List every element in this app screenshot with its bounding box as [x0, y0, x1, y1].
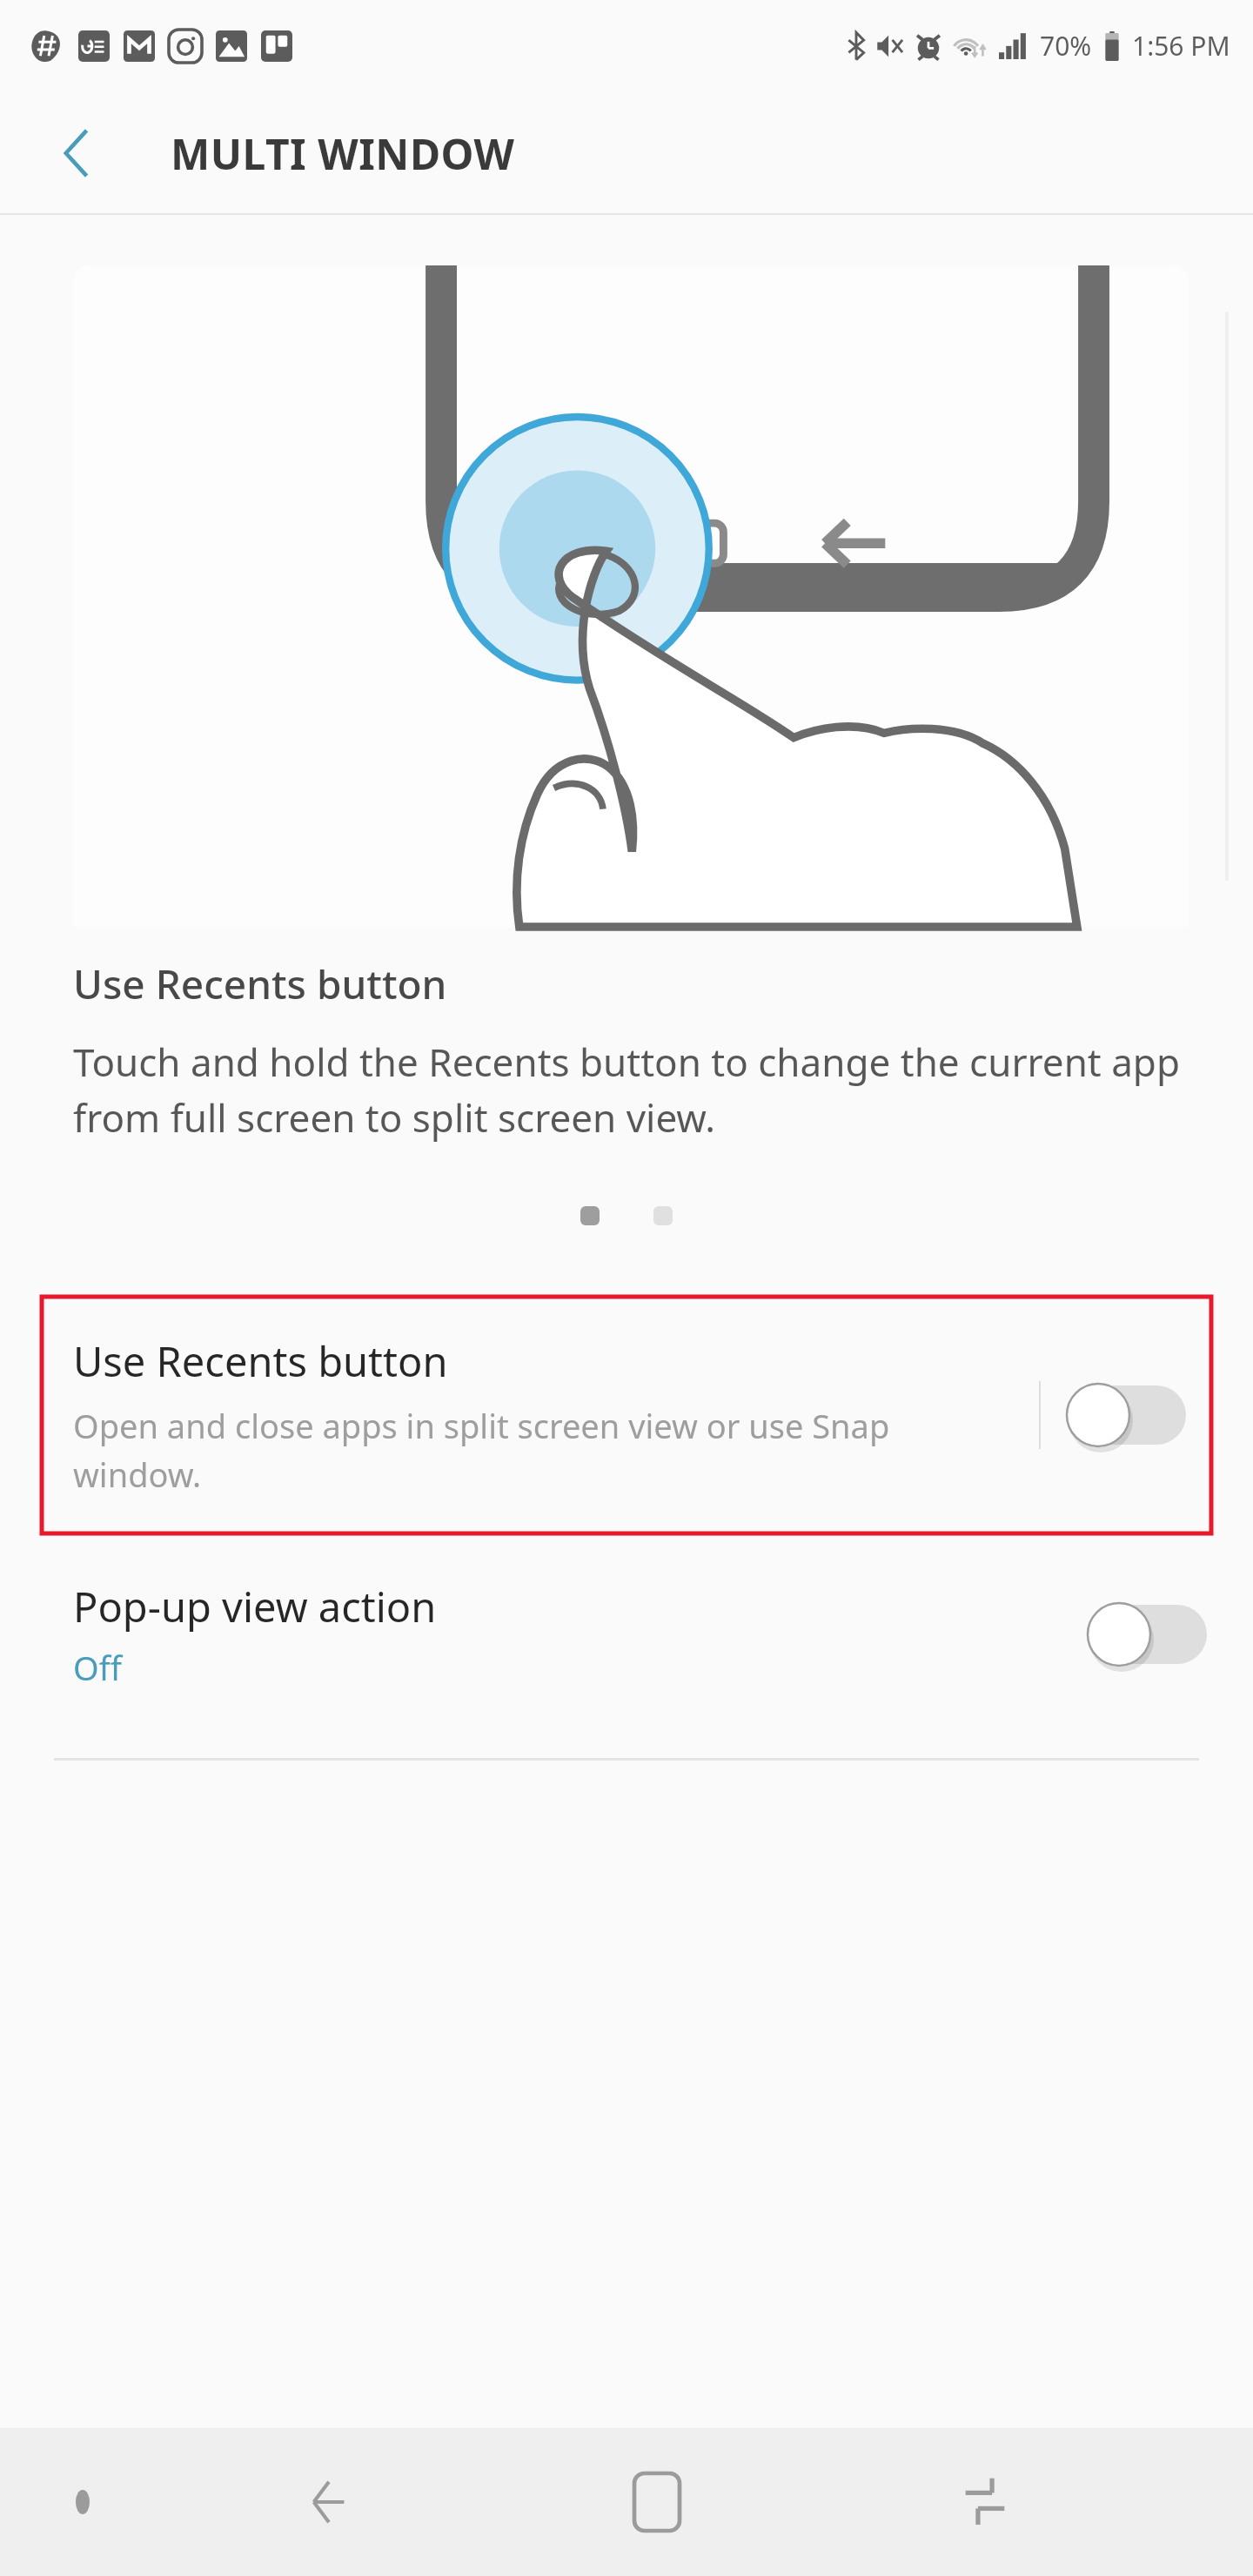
- staticText: Open and close apps in split screen view…: [73, 1403, 1022, 1497]
- staticText: Use Recents button: [73, 956, 447, 1011]
- button[interactable]: Use Recents button: [42, 1297, 1211, 1533]
- button[interactable]: Recent apps: [821, 2428, 1149, 2576]
- staticText: 70%: [1040, 28, 1092, 64]
- staticText: 1:56 PM: [1132, 28, 1230, 64]
- button[interactable]: Toggle off: [1087, 1602, 1207, 1667]
- button[interactable]: Back: [44, 120, 110, 186]
- button[interactable]: Page 2: [653, 1206, 673, 1225]
- button[interactable]: Back: [165, 2428, 492, 2576]
- button[interactable]: Page 1: [580, 1206, 600, 1225]
- staticText: Use Recents button: [73, 1333, 448, 1389]
- button[interactable]: Pop-up view action: [0, 1546, 1253, 1723]
- button[interactable]: Home: [492, 2428, 821, 2576]
- staticText: Off: [73, 1645, 122, 1690]
- button[interactable]: Show recent apps indicator: [0, 2428, 165, 2576]
- staticText: MULTI WINDOW: [171, 125, 515, 182]
- staticText: Pop-up view action: [73, 1579, 437, 1634]
- staticText: Touch and hold the Recents button to cha…: [73, 1036, 1192, 1144]
- button[interactable]: Toggle off: [1066, 1383, 1186, 1447]
